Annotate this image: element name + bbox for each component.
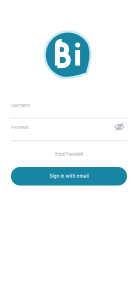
staticText: Sign in with email	[49, 174, 88, 179]
button[interactable]: Sign in with email	[11, 167, 127, 185]
button[interactable]: Show password	[113, 121, 126, 132]
staticText: Username	[11, 103, 30, 108]
staticText: Password	[11, 125, 28, 130]
staticText: Reset Password	[54, 152, 83, 157]
button[interactable]: Reset Password	[11, 150, 127, 158]
